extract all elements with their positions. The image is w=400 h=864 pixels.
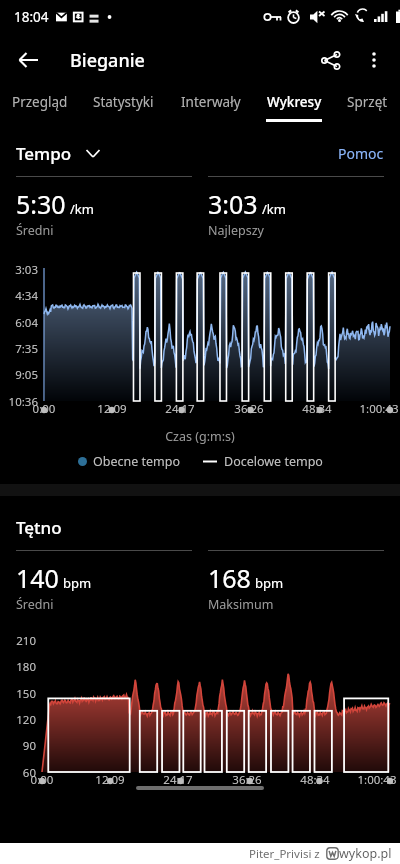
staticText: 36:26	[223, 772, 271, 788]
staticText: 210	[0, 633, 36, 649]
staticText: Czas (g:m:s)	[0, 428, 400, 445]
staticText: 140	[16, 561, 59, 595]
staticText: Średni	[16, 222, 54, 239]
staticText: 90	[0, 738, 36, 754]
staticText: 10:36	[0, 394, 38, 410]
staticText: 180	[0, 659, 36, 675]
staticText: 7:35	[0, 341, 38, 357]
staticText: bpm	[255, 574, 284, 592]
button[interactable]: Share	[308, 38, 352, 82]
staticText: /km	[70, 200, 94, 218]
staticText: 12:09	[86, 772, 134, 788]
staticText: 48:34	[291, 772, 339, 788]
staticText: Interwały	[181, 93, 241, 111]
staticText: Pomoc	[338, 144, 384, 163]
staticText: Maksimum	[208, 596, 274, 613]
staticText: Tempo	[16, 142, 72, 165]
staticText: 168	[208, 561, 251, 595]
staticText: 3:03	[0, 262, 38, 278]
staticText: 0:00	[20, 401, 68, 417]
staticText: 3:03	[208, 187, 258, 221]
staticText: 12:09	[88, 401, 136, 417]
staticText: 1:00:43	[355, 401, 400, 417]
staticText: 36:26	[225, 401, 273, 417]
button[interactable]: Back	[6, 38, 50, 82]
button[interactable]: Tempo	[16, 142, 100, 165]
staticText: 1:00:43	[353, 772, 400, 788]
staticText: wykop.pl	[339, 845, 392, 862]
staticText: Obecne tempo	[93, 453, 181, 470]
staticText: 48:34	[293, 401, 341, 417]
button[interactable]: Tętno	[16, 516, 62, 539]
button[interactable]: Sprzęt	[334, 86, 400, 128]
staticText: Tętno	[16, 516, 62, 539]
staticText: 6:04	[0, 315, 38, 331]
staticText: Bieganie	[70, 48, 145, 73]
button[interactable]: Wykresy	[254, 86, 334, 128]
staticText: 24:17	[156, 401, 204, 417]
staticText: Średni	[16, 596, 54, 613]
staticText: Piter_Privisi z	[249, 846, 320, 862]
staticText: 4:34	[0, 288, 38, 304]
staticText: Wykresy	[267, 93, 322, 111]
staticText: 9:05	[0, 367, 38, 383]
staticText: 18:04	[14, 8, 49, 26]
staticText: 0:00	[18, 772, 66, 788]
staticText: 150	[0, 686, 36, 702]
button[interactable]: Pomoc	[338, 144, 384, 163]
staticText: 24:17	[154, 772, 202, 788]
staticText: 120	[0, 712, 36, 728]
staticText: 60	[0, 765, 36, 781]
button[interactable]: More options	[352, 38, 396, 82]
staticText: 5:30	[16, 187, 66, 221]
staticText: bpm	[63, 574, 92, 592]
staticText: Statystyki	[93, 93, 154, 111]
staticText: Docelowe tempo	[224, 453, 323, 470]
staticText: Przegląd	[12, 93, 68, 111]
button[interactable]: Statystyki	[79, 86, 168, 128]
button[interactable]: Interwały	[168, 86, 254, 128]
staticText: Sprzęt	[347, 93, 388, 111]
button[interactable]: Przegląd	[0, 86, 79, 128]
staticText: Najlepszy	[208, 222, 264, 239]
staticText: /km	[262, 200, 286, 218]
